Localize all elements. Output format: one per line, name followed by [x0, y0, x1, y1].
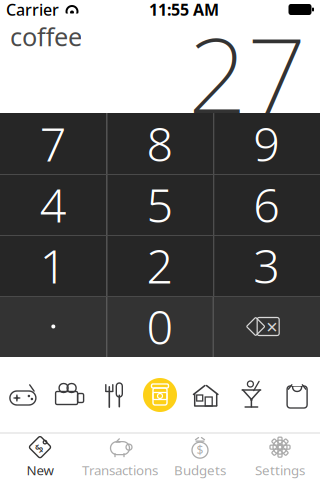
staticText: Carrier — [6, 0, 59, 20]
staticText: $ — [35, 440, 42, 456]
button[interactable]: 5 — [107, 174, 213, 235]
staticText: 6 — [253, 173, 280, 235]
button[interactable]: Settings — [240, 433, 320, 480]
button[interactable]: 7 — [0, 113, 107, 174]
staticText: 9 — [253, 112, 280, 174]
button[interactable]: Drinks — [229, 357, 274, 432]
staticText: 2 — [146, 234, 173, 296]
button[interactable]: 8 — [107, 113, 213, 174]
staticText: 4 — [40, 173, 67, 235]
button[interactable]: Transactions — [80, 433, 160, 480]
button[interactable]: Delete — [213, 296, 320, 357]
staticText: 8 — [146, 112, 173, 174]
staticText: 0 — [146, 295, 173, 357]
button[interactable]: 9 — [213, 113, 320, 174]
staticText: × — [266, 313, 277, 340]
staticText: 11:55 AM — [149, 0, 219, 20]
staticText: Budgets — [174, 461, 226, 479]
button[interactable]: 0 — [107, 296, 213, 357]
button[interactable]: Home — [183, 357, 229, 432]
button[interactable]: Movies — [46, 357, 91, 432]
button[interactable]: $ — [0, 433, 80, 480]
button[interactable]: Games — [0, 357, 46, 432]
button[interactable]: 6 — [213, 174, 320, 235]
staticText: 3 — [253, 234, 280, 296]
staticText: Settings — [255, 461, 305, 479]
staticText: 27 — [188, 4, 306, 142]
staticText: 7 — [40, 112, 67, 174]
button[interactable]: 1 — [0, 235, 107, 296]
button[interactable]: $ — [160, 433, 240, 480]
button[interactable]: 4 — [0, 174, 107, 235]
button[interactable]: Coffee — [137, 357, 183, 432]
staticText: coffee — [10, 19, 82, 53]
button[interactable]: Clothing — [274, 357, 320, 432]
staticText: $ — [196, 442, 203, 458]
staticText: 1 — [40, 234, 67, 296]
button[interactable] — [0, 296, 107, 357]
staticText: 5 — [146, 173, 173, 235]
staticText: New — [26, 461, 53, 479]
staticText: Transactions — [82, 461, 158, 479]
button[interactable]: 2 — [107, 235, 213, 296]
button[interactable]: 3 — [213, 235, 320, 296]
button[interactable]: Food — [91, 357, 137, 432]
